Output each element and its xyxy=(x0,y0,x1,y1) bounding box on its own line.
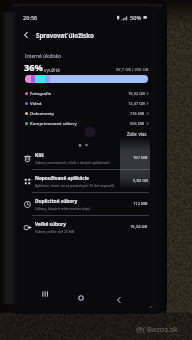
staticText: 5,84 GB xyxy=(133,178,148,184)
button[interactable]: Nepoužívané aplikácie xyxy=(21,170,150,192)
staticText: Videá xyxy=(30,100,42,106)
button[interactable]: Back xyxy=(20,29,32,41)
button[interactable]: Recents xyxy=(38,287,51,300)
staticText: @( Bazos.sk xyxy=(136,324,178,334)
button[interactable]: Fotografie xyxy=(25,88,149,98)
staticText: Nepoužívané aplikácie xyxy=(35,175,89,182)
button[interactable]: Komprimované súbory xyxy=(25,118,149,128)
staticText: Dokumenty xyxy=(30,110,55,116)
staticText: využité xyxy=(44,67,60,73)
staticText: 10,52 GB xyxy=(128,91,145,96)
staticText: Komprimované súbory xyxy=(30,120,77,126)
staticText: Duplicitné súbory xyxy=(35,198,78,205)
staticText: Kôš xyxy=(35,152,44,159)
button[interactable]: Back xyxy=(112,293,125,306)
button[interactable]: Videá xyxy=(25,98,149,108)
staticText: Súbory umiestnené v Koši v daných apliká… xyxy=(35,160,110,165)
staticText: 20:56 xyxy=(23,14,38,22)
button[interactable]: Home xyxy=(74,291,87,304)
button[interactable]: Zobr. viac xyxy=(125,130,149,138)
staticText: Interné úložisko xyxy=(25,53,62,59)
staticText: 736 MB xyxy=(130,111,145,116)
staticText: 36% xyxy=(24,61,43,74)
button[interactable]: Duplicitné súbory xyxy=(21,193,150,215)
staticText: Fotografie xyxy=(30,90,52,96)
staticText: Veľké súbory xyxy=(35,221,66,228)
staticText: Spravovať úložisko xyxy=(36,31,94,39)
staticText: Súbory, ktorých máte viacero kópií xyxy=(35,206,90,211)
staticText: Súbory väčšie než 25 MB xyxy=(35,229,75,234)
staticText: Aplikácie, ktoré ste za posledných 30 dn… xyxy=(35,183,115,188)
staticText: 15,34 GB xyxy=(130,224,148,230)
button[interactable]: Kôš xyxy=(21,147,150,169)
staticText: Zobr. viac xyxy=(127,131,147,137)
staticText: 50% xyxy=(130,14,142,22)
staticText: 13,47 GB xyxy=(128,101,145,106)
button[interactable]: Dokumenty xyxy=(25,108,149,118)
staticText: 506 MB xyxy=(130,121,145,126)
button[interactable]: Veľké súbory xyxy=(21,216,150,238)
staticText: 112 MB xyxy=(133,201,148,207)
staticText: 92,7 GB / 256 GB xyxy=(116,67,149,73)
staticText: 167 MB xyxy=(133,155,148,161)
